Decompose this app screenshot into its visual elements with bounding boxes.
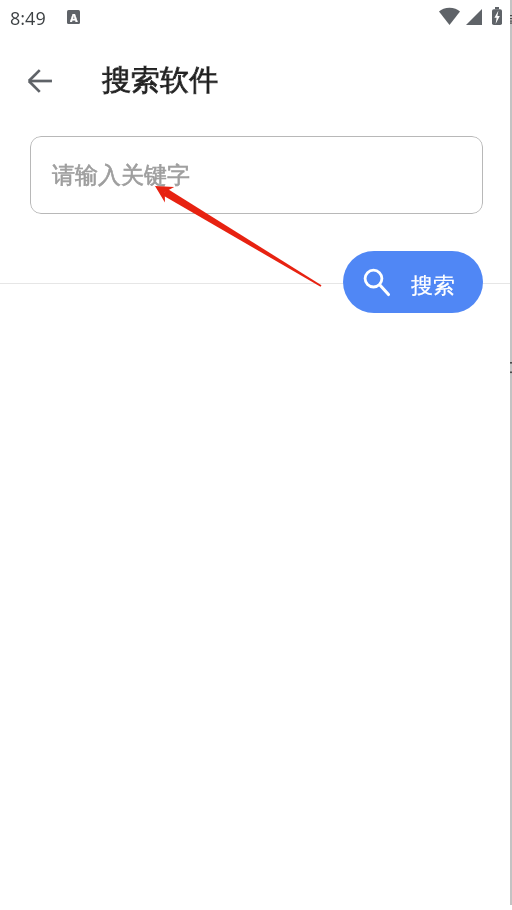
staticText: 请输入关键字 <box>52 161 190 190</box>
button[interactable]: 请输入关键字 <box>30 136 483 214</box>
button[interactable]: Back <box>16 57 64 105</box>
staticText: 8:49 <box>10 6 46 31</box>
staticText: 请输入关键字 <box>52 161 190 190</box>
staticText: 搜索软件 <box>102 62 218 99</box>
staticText: A <box>70 10 78 24</box>
button[interactable]: 搜索 <box>343 251 483 313</box>
staticText: 搜索 <box>411 272 455 300</box>
staticText: 搜索软件 <box>102 62 218 99</box>
